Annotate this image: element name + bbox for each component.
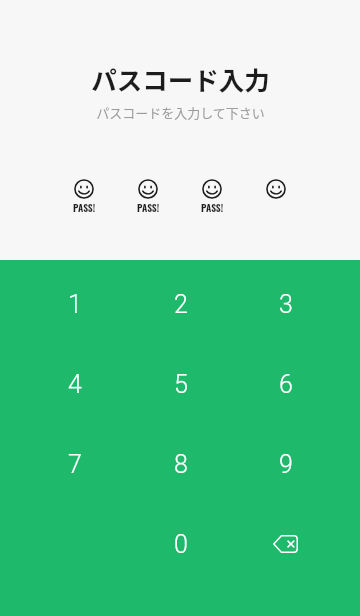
staticText: PASS! xyxy=(137,201,160,215)
button[interactable]: Delete xyxy=(233,504,338,584)
staticText: 0 xyxy=(174,530,188,559)
button[interactable]: 2 xyxy=(128,264,233,344)
button[interactable]: 8 xyxy=(128,424,233,504)
staticText: 3 xyxy=(279,290,293,319)
staticText: 8 xyxy=(174,450,188,479)
button[interactable]: 1 xyxy=(22,264,128,344)
staticText: 6 xyxy=(279,370,293,399)
staticText: 7 xyxy=(68,450,82,479)
button[interactable]: 9 xyxy=(233,424,338,504)
button[interactable]: 6 xyxy=(233,344,338,424)
button[interactable]: 0 xyxy=(128,504,233,584)
staticText: パスコードを入力して下さい xyxy=(96,103,265,122)
staticText: PASS! xyxy=(201,201,224,215)
button[interactable]: 7 xyxy=(22,424,128,504)
staticText: 5 xyxy=(174,370,188,399)
staticText: パスコード入力 xyxy=(91,60,270,97)
button[interactable]: 4 xyxy=(22,344,128,424)
staticText: 9 xyxy=(279,450,293,479)
button[interactable]: 5 xyxy=(128,344,233,424)
staticText: 2 xyxy=(174,290,188,319)
staticText: PASS! xyxy=(73,201,96,215)
staticText: 1 xyxy=(68,290,82,319)
staticText: 4 xyxy=(68,370,82,399)
button[interactable]: 3 xyxy=(233,264,338,344)
